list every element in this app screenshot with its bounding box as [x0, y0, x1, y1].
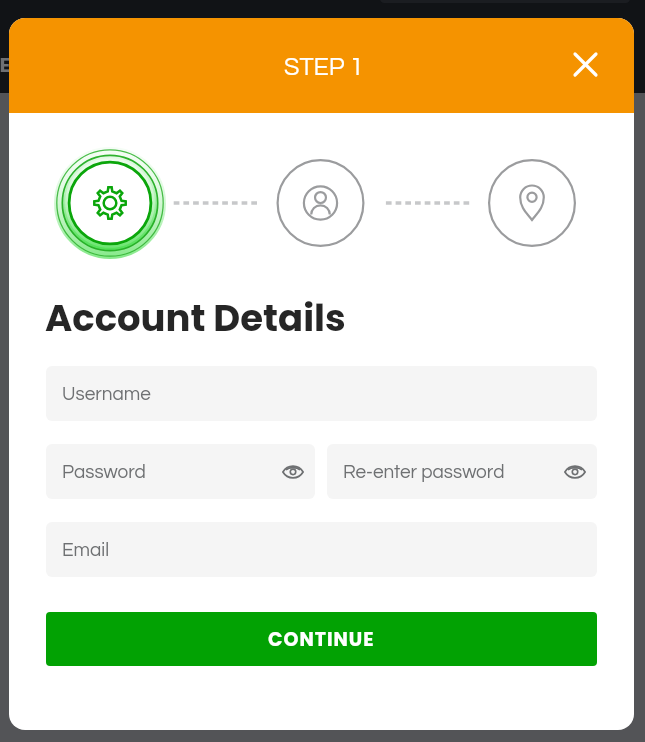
button[interactable]: CONTINUE	[46, 612, 597, 666]
button[interactable]: Show password	[278, 457, 308, 487]
staticText: Account Details	[45, 292, 346, 344]
staticText: YE	[0, 51, 11, 79]
button[interactable]: Username	[46, 366, 597, 421]
staticText: CONTINUE	[268, 626, 375, 653]
staticText: Email	[62, 540, 110, 560]
staticText: Re-enter password	[343, 462, 505, 482]
staticText: Username	[62, 384, 151, 404]
staticText: STEP 1	[284, 54, 364, 80]
staticText: Password	[62, 462, 146, 482]
button[interactable]: Show password	[560, 457, 590, 487]
button[interactable]: Close	[561, 40, 609, 88]
button[interactable]: Password	[46, 444, 315, 499]
button[interactable]: Email	[46, 522, 597, 577]
button[interactable]: Re-enter password	[327, 444, 597, 499]
